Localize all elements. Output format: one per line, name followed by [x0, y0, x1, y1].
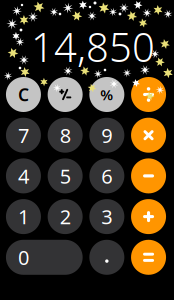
button[interactable]: Subtract — [131, 158, 166, 193]
button[interactable]: 8 — [48, 118, 83, 153]
button[interactable]: 1 — [6, 199, 41, 234]
button[interactable]: 0 — [6, 240, 83, 275]
button[interactable]: 9 — [89, 118, 124, 153]
button[interactable]: % — [89, 77, 124, 112]
button[interactable]: 3 — [89, 199, 124, 234]
staticText: 5 — [60, 163, 71, 189]
staticText: % — [100, 85, 113, 104]
staticText: 1 — [18, 203, 29, 230]
staticText: 9 — [101, 122, 112, 148]
staticText: 7 — [18, 122, 29, 148]
button[interactable]: 2 — [48, 199, 83, 234]
button[interactable]: C — [6, 77, 41, 112]
staticText: 4 — [18, 163, 29, 189]
staticText: C — [18, 83, 29, 106]
button[interactable]: Equals — [131, 240, 166, 275]
button[interactable]: Multiply — [131, 118, 166, 153]
staticText: 0 — [18, 244, 29, 271]
button[interactable]: Toggle sign — [48, 77, 83, 112]
button[interactable]: 4 — [6, 158, 41, 193]
button[interactable]: 5 — [48, 158, 83, 193]
staticText: 2 — [60, 203, 71, 230]
button[interactable]: Divide — [131, 77, 166, 112]
button[interactable]: 6 — [89, 158, 124, 193]
button[interactable]: Decimal point — [89, 240, 124, 275]
staticText: 3 — [101, 203, 112, 230]
staticText: 14,850 — [31, 20, 155, 73]
staticText: 6 — [101, 163, 112, 189]
button[interactable]: Add — [131, 199, 166, 234]
button[interactable]: 7 — [6, 118, 41, 153]
staticText: 8 — [60, 122, 71, 148]
